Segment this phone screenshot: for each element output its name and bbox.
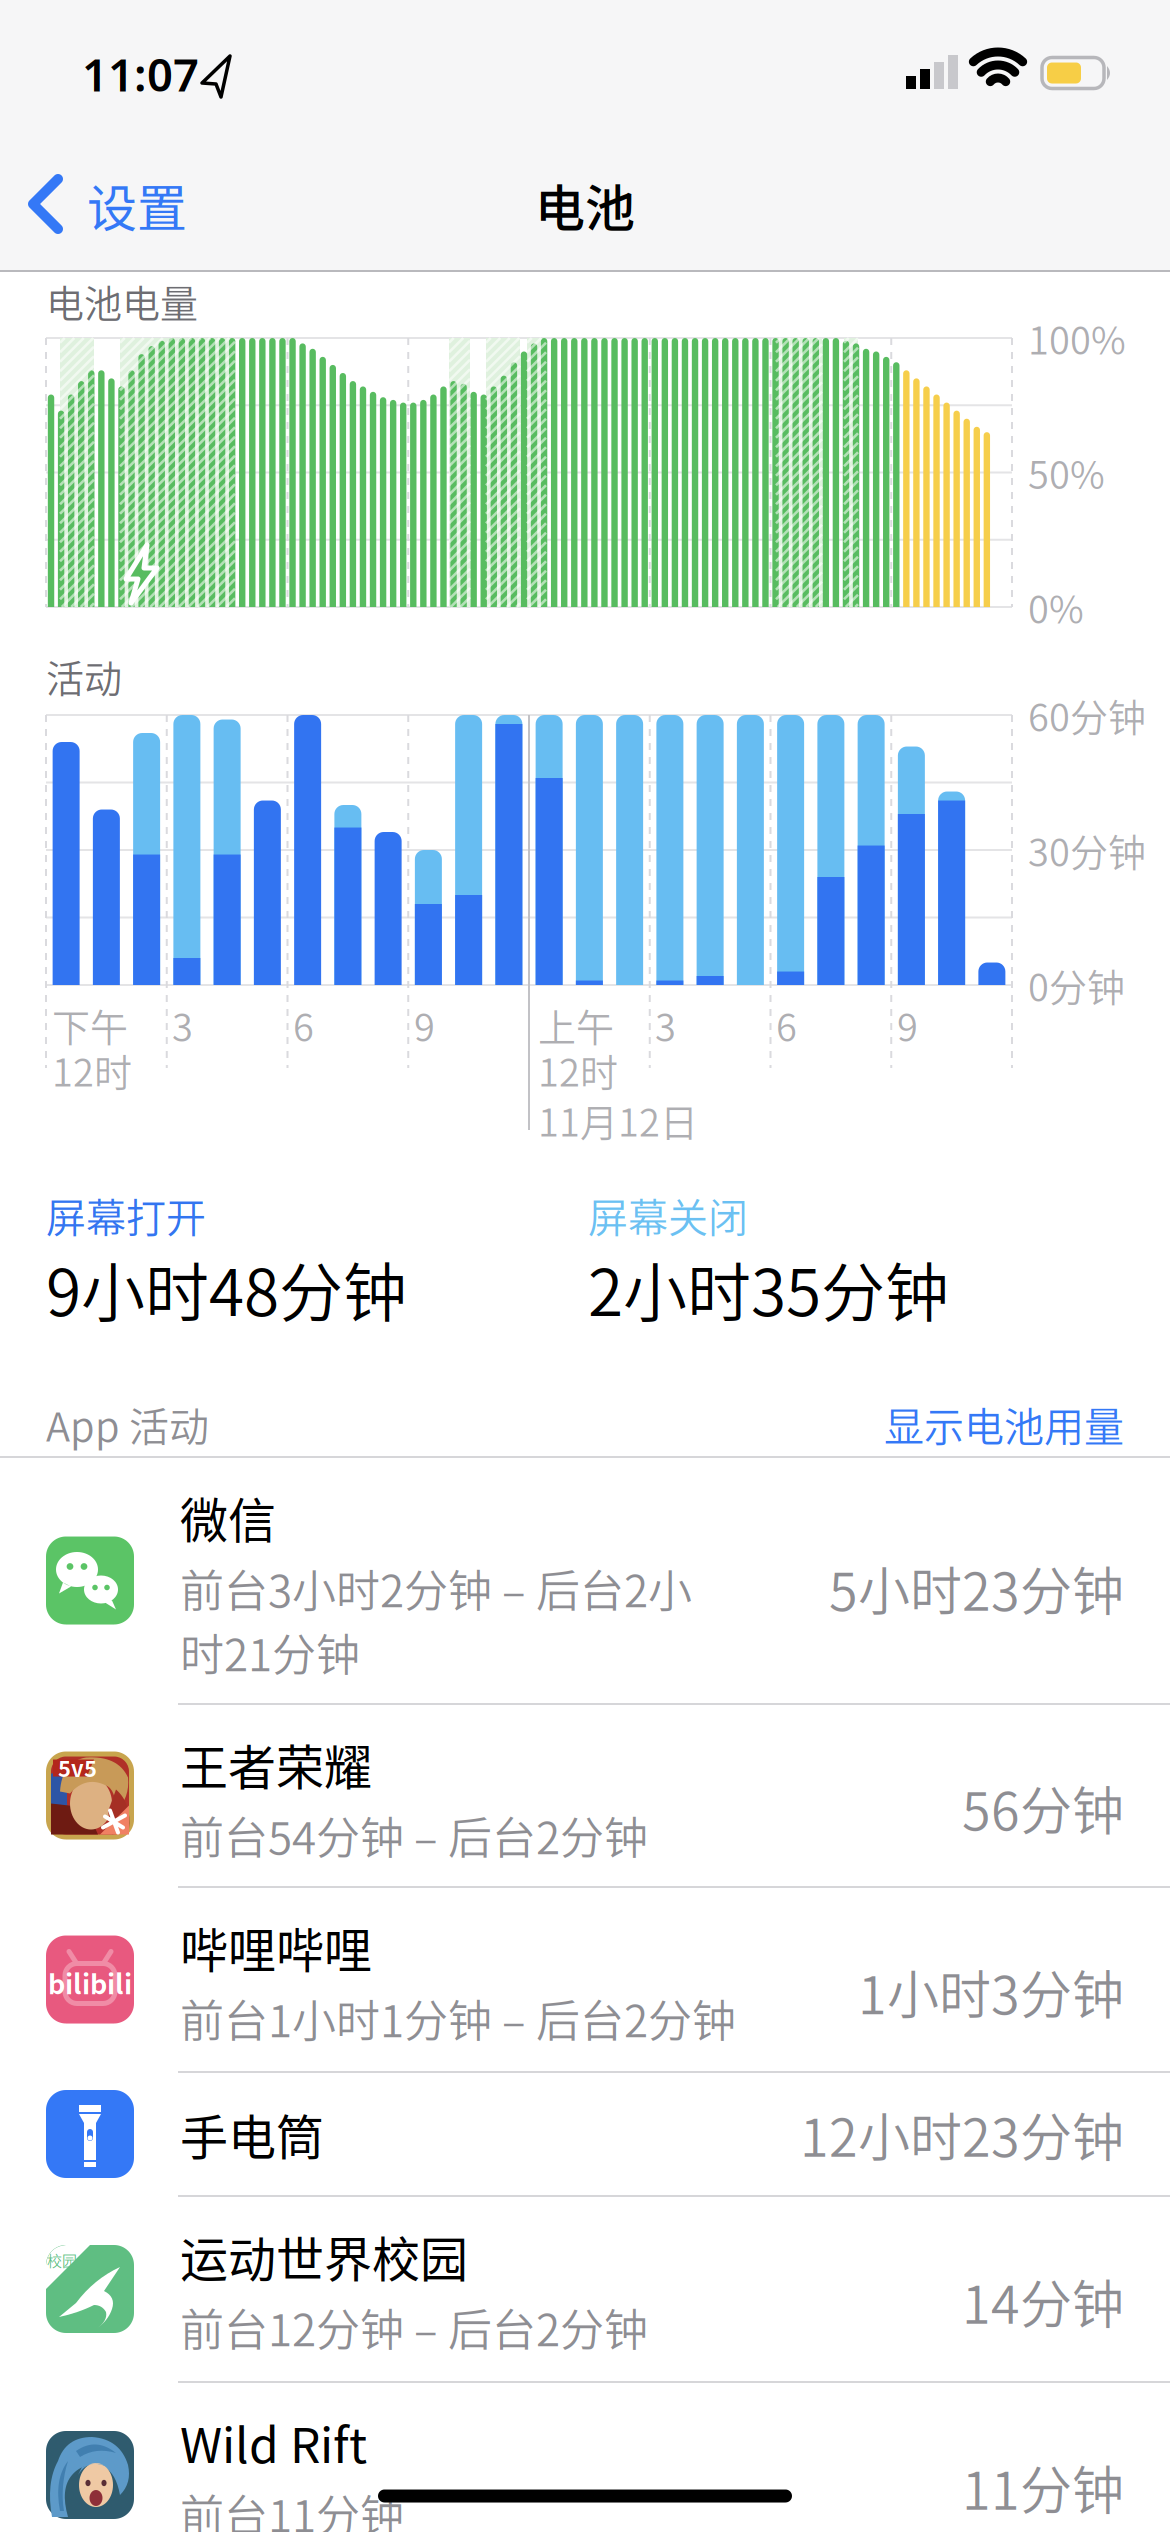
staticText: 显示电池用量	[884, 1395, 1124, 1453]
staticText: 6	[293, 997, 314, 1052]
button[interactable]: Wild Rift	[0, 2382, 1170, 2532]
staticText: 0分钟	[1028, 957, 1125, 1012]
button[interactable]: 显示电池用量	[704, 1389, 1124, 1459]
staticText: 0%	[1028, 579, 1084, 634]
staticText: 9	[897, 997, 918, 1052]
staticText: 11:07	[82, 44, 199, 104]
button[interactable]: 校园	[0, 2196, 1170, 2382]
staticText: 前台3小时2分钟 – 后台2小	[180, 1556, 692, 1620]
staticText: Wild Rift	[180, 2407, 367, 2477]
staticText: 手电筒	[180, 2099, 324, 2169]
staticText: 12时	[538, 1042, 618, 1097]
staticText: 校园	[47, 2249, 77, 2271]
staticText: 上午	[538, 997, 614, 1052]
staticText: 30分钟	[1028, 822, 1146, 877]
staticText: App 活动	[46, 1395, 209, 1453]
staticText: 50%	[1028, 445, 1105, 500]
staticText: 9	[414, 997, 435, 1052]
staticText: 12时	[52, 1042, 132, 1097]
button[interactable]: 5v5	[0, 1704, 1170, 1887]
staticText: 设置	[87, 169, 187, 241]
staticText: 11分钟	[962, 2449, 1124, 2525]
staticText: 电池	[535, 169, 635, 241]
staticText: 哔哩哔哩	[180, 1912, 372, 1982]
staticText: 时21分钟	[180, 1620, 360, 1684]
staticText: 屏幕打开	[46, 1186, 206, 1244]
staticText: 56分钟	[962, 1770, 1124, 1845]
staticText: 前台12分钟 – 后台2分钟	[180, 2295, 648, 2359]
staticText: 前台11分钟	[180, 2481, 404, 2532]
staticText: 5v5	[58, 1752, 97, 1783]
staticText: 电池电量	[46, 273, 198, 328]
staticText: 3	[172, 997, 193, 1052]
button[interactable]: 返回设置	[25, 159, 255, 249]
staticText: bilibili	[48, 1963, 132, 2002]
staticText: 11月12日	[538, 1092, 698, 1147]
staticText: 14分钟	[962, 2263, 1124, 2339]
button[interactable]: 手电筒	[0, 2072, 1170, 2196]
staticText: 运动世界校园	[180, 2221, 468, 2291]
staticText: 微信	[180, 1482, 276, 1552]
staticText: 王者荣耀	[180, 1729, 372, 1799]
staticText: 60分钟	[1028, 687, 1146, 742]
staticText: 前台54分钟 – 后台2分钟	[180, 1803, 648, 1867]
staticText: 5小时23分钟	[829, 1550, 1124, 1626]
staticText: 前台1小时1分钟 – 后台2分钟	[180, 1986, 736, 2050]
staticText: 100%	[1028, 310, 1126, 365]
staticText: 活动	[46, 648, 122, 703]
staticText: 6	[776, 997, 797, 1052]
staticText: 下午	[52, 997, 128, 1052]
staticText: 屏幕关闭	[588, 1186, 748, 1244]
staticText: 1小时3分钟	[858, 1954, 1124, 2029]
staticText: 2小时35分钟	[588, 1242, 949, 1334]
button[interactable]: 微信	[0, 1457, 1170, 1704]
staticText: 9小时48分钟	[46, 1242, 407, 1334]
button[interactable]: bilibili	[0, 1887, 1170, 2072]
staticText: 3	[655, 997, 676, 1052]
staticText: 12小时23分钟	[800, 2096, 1124, 2172]
